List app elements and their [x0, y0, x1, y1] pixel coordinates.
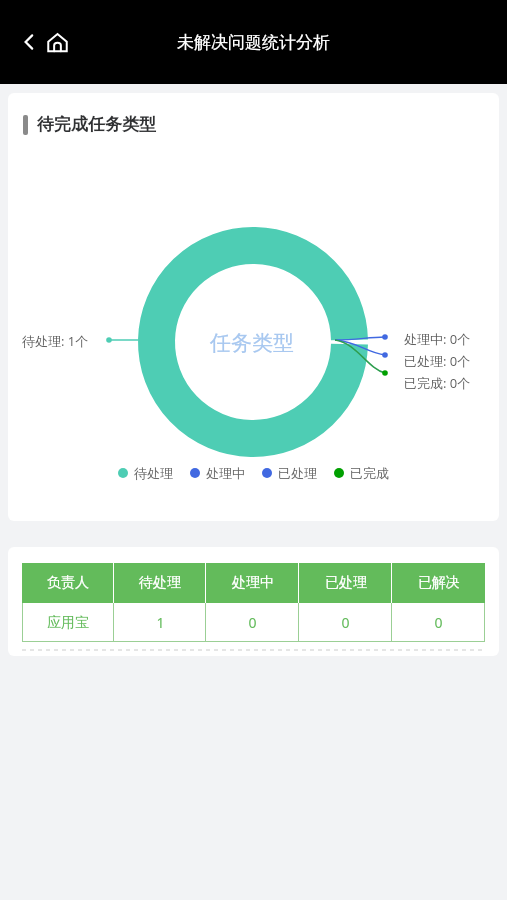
button[interactable]: Home	[40, 25, 74, 59]
button[interactable]: 已处理	[299, 563, 392, 603]
button[interactable]: 已完成	[334, 465, 389, 481]
staticText: 0	[434, 613, 443, 632]
staticText: 待处理	[139, 574, 181, 592]
staticText: 已解决	[418, 574, 460, 592]
button[interactable]: 0	[392, 603, 485, 642]
staticText: 已完成: 0个	[404, 374, 471, 392]
button[interactable]: 处理中	[206, 563, 299, 603]
button[interactable]: 已解决	[392, 563, 485, 603]
staticText: 1	[156, 613, 165, 632]
button[interactable]: 负责人	[22, 563, 114, 603]
button[interactable]: 应用宝	[22, 603, 114, 642]
staticText: 待处理	[134, 465, 173, 481]
staticText: 待完成任务类型	[37, 114, 156, 135]
staticText: 0	[248, 613, 257, 632]
staticText: 处理中	[232, 574, 274, 592]
staticText: 已处理	[325, 574, 367, 592]
staticText: 已完成	[350, 465, 389, 481]
button[interactable]: Back	[12, 25, 46, 59]
button[interactable]: 0	[299, 603, 392, 642]
button[interactable]: 已处理	[262, 465, 317, 481]
button[interactable]: 待处理	[118, 465, 173, 481]
button[interactable]: 待处理	[114, 563, 206, 603]
staticText: 待处理: 1个	[22, 332, 89, 350]
staticText: 已处理	[278, 465, 317, 481]
button[interactable]: 处理中	[190, 465, 245, 481]
staticText: 负责人	[47, 574, 89, 592]
staticText: 处理中	[206, 465, 245, 481]
staticText: 未解决问题统计分析	[177, 32, 330, 53]
button[interactable]: 1	[114, 603, 206, 642]
staticText: 处理中: 0个	[404, 330, 471, 348]
staticText: 0	[341, 613, 350, 632]
staticText: 应用宝	[47, 614, 89, 632]
staticText: 已处理: 0个	[404, 352, 471, 370]
staticText: 任务类型	[210, 330, 294, 356]
button[interactable]: 0	[206, 603, 299, 642]
